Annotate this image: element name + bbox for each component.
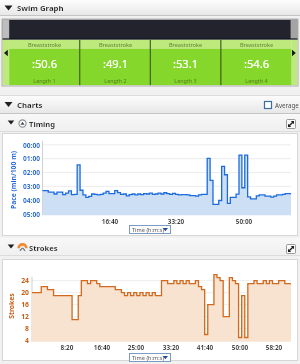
staticText: 50:00 — [229, 217, 259, 226]
staticText: 25:00 — [121, 343, 151, 352]
button[interactable]: Breaststroke — [150, 40, 221, 85]
staticText: Strokes — [7, 274, 16, 338]
staticText: 24 — [0, 276, 29, 285]
button[interactable]: Breaststroke — [80, 40, 151, 85]
button[interactable]: Strokes — [0, 238, 300, 256]
staticText: 00:00 — [4, 141, 40, 150]
staticText: 16:40 — [95, 217, 125, 226]
button[interactable]: Breaststroke — [221, 40, 292, 85]
staticText: Average — [275, 101, 299, 109]
button[interactable]: Average — [264, 99, 299, 110]
staticText: 33:20 — [161, 217, 191, 226]
staticText: 58:20 — [259, 343, 289, 352]
button[interactable]: Swim Graph — [0, 0, 300, 16]
staticText: 04:00 — [4, 196, 40, 205]
staticText: 16 — [0, 300, 29, 309]
staticText: Breaststroke — [80, 41, 151, 49]
staticText: Length 4 — [221, 77, 292, 84]
staticText: 12 — [0, 312, 29, 321]
staticText: 4 — [0, 336, 29, 345]
staticText: 8:20 — [52, 343, 82, 352]
staticText: 33:20 — [156, 343, 186, 352]
staticText: 8 — [0, 324, 29, 333]
staticText: Time (h:m:s) — [132, 354, 165, 362]
staticText: Length 3 — [150, 77, 221, 84]
staticText: Breaststroke — [221, 41, 292, 49]
staticText: :49.1 — [80, 56, 151, 71]
staticText: 01:00 — [4, 154, 40, 163]
staticText: 20 — [0, 288, 29, 297]
staticText: Time (h:m:s) — [132, 226, 165, 234]
button[interactable]: Time (h:m:s) — [129, 353, 171, 362]
staticText: :54.6 — [221, 56, 292, 71]
staticText: Timing — [29, 119, 56, 129]
staticText: Length 1 — [9, 77, 80, 84]
staticText: Breaststroke — [150, 41, 221, 49]
staticText: 16:40 — [87, 343, 117, 352]
staticText: :53.1 — [150, 56, 221, 71]
staticText: 50:00 — [225, 343, 255, 352]
button[interactable]: Charts — [0, 95, 300, 114]
button[interactable]: Expand Timing chart — [286, 119, 296, 129]
staticText: 03:00 — [4, 182, 40, 191]
button[interactable]: Timing — [0, 114, 300, 132]
staticText: :50.6 — [9, 56, 80, 71]
staticText: 02:00 — [4, 168, 40, 177]
button[interactable]: Breaststroke — [9, 40, 80, 85]
staticText: 05:00 — [4, 210, 40, 219]
button[interactable]: Time (h:m:s) — [129, 225, 171, 234]
staticText: Strokes — [29, 243, 58, 253]
button[interactable]: Expand Strokes chart — [286, 244, 296, 254]
staticText: Pace (min/100 m) — [9, 148, 18, 212]
staticText: Charts — [17, 100, 43, 111]
staticText: Length 2 — [80, 77, 151, 84]
staticText: Swim Graph — [17, 3, 64, 14]
staticText: 41:40 — [190, 343, 220, 352]
staticText: Breaststroke — [9, 41, 80, 49]
